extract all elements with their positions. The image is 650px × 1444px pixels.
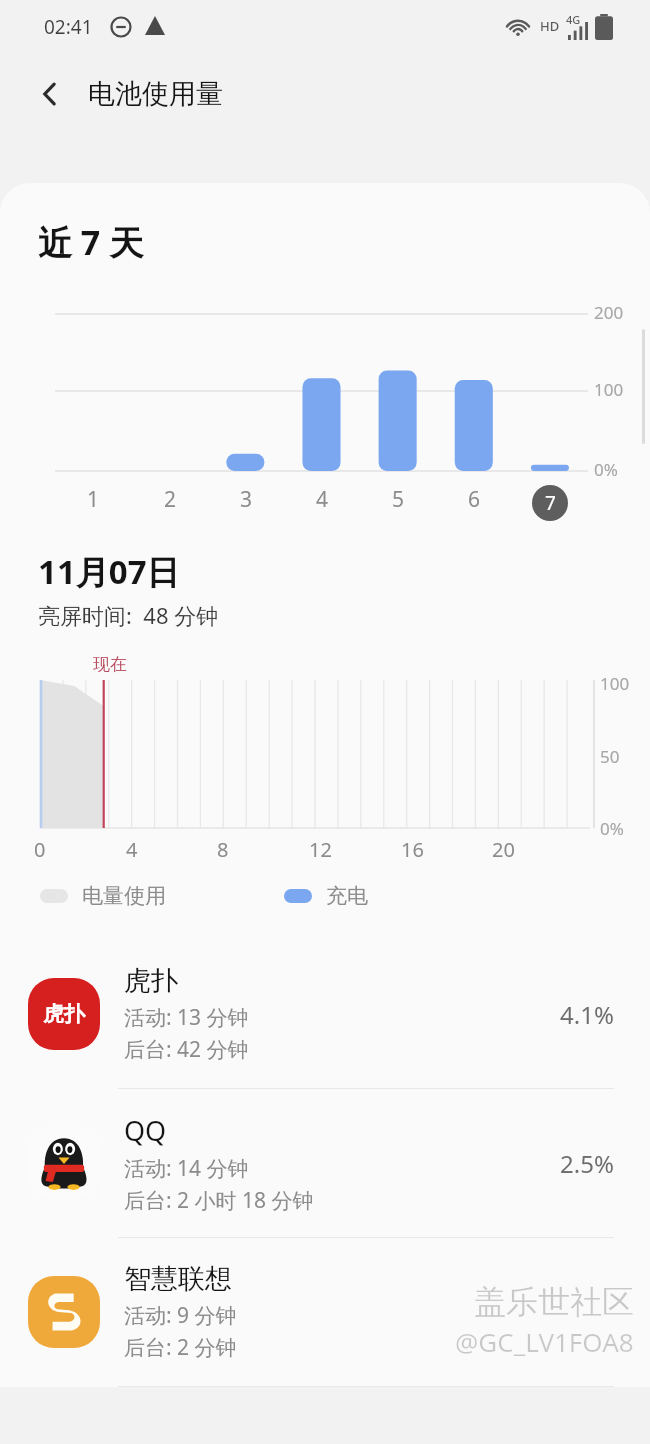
- button[interactable]: Back: [26, 70, 74, 118]
- staticText: 4G: [566, 12, 581, 27]
- button[interactable]: 4: [316, 485, 329, 514]
- staticText: 活动: 14 分钟: [124, 1154, 249, 1183]
- staticText: 20: [492, 836, 515, 863]
- staticText: QQ: [124, 1112, 167, 1149]
- staticText: 0%: [600, 817, 624, 840]
- staticText: 8: [217, 836, 229, 863]
- staticText: 盖乐世社区: [474, 1282, 634, 1322]
- button[interactable]: 1: [87, 485, 100, 514]
- staticText: 100: [600, 672, 630, 695]
- staticText: 02:41: [44, 14, 93, 40]
- staticText: 后台: 2 分钟: [124, 1333, 237, 1362]
- button[interactable]: 3: [240, 485, 253, 514]
- staticText: 后台: 2 小时 18 分钟: [124, 1186, 314, 1215]
- staticText: 0%: [594, 458, 618, 481]
- button[interactable]: QQ: [0, 1089, 650, 1237]
- staticText: 0: [34, 836, 46, 863]
- staticText: HD: [540, 17, 560, 35]
- button[interactable]: 智慧联想: [0, 1238, 650, 1386]
- staticText: 智慧联想: [124, 1262, 232, 1296]
- staticText: 50: [600, 745, 620, 768]
- staticText: 活动: 13 分钟: [124, 1003, 249, 1032]
- staticText: 电量使用: [82, 883, 166, 909]
- staticText: 4: [126, 836, 138, 863]
- staticText: @GC_LV1FOA8: [455, 1324, 634, 1359]
- staticText: 2.5%: [560, 1147, 614, 1180]
- staticText: 充电: [326, 883, 368, 909]
- staticText: 7: [545, 490, 556, 516]
- staticText: 虎扑: [43, 1001, 85, 1027]
- button[interactable]: 虎扑: [0, 940, 650, 1088]
- staticText: 现在: [93, 654, 127, 675]
- button[interactable]: 5: [392, 485, 405, 514]
- staticText: 11月07日: [38, 549, 180, 594]
- button[interactable]: 7: [532, 485, 568, 521]
- staticText: 100: [594, 378, 624, 401]
- staticText: 200: [594, 301, 624, 324]
- staticText: 亮屏时间: 48 分钟: [38, 600, 219, 630]
- staticText: 近 7 天: [38, 219, 144, 265]
- staticText: 后台: 42 分钟: [124, 1035, 249, 1064]
- staticText: 虎扑: [124, 964, 178, 998]
- staticText: 16: [401, 836, 424, 863]
- staticText: 12: [309, 836, 332, 863]
- button[interactable]: 6: [468, 485, 481, 514]
- staticText: 电池使用量: [88, 77, 223, 111]
- staticText: 活动: 9 分钟: [124, 1301, 237, 1330]
- button[interactable]: 2: [164, 485, 177, 514]
- staticText: 4.1%: [560, 998, 614, 1031]
